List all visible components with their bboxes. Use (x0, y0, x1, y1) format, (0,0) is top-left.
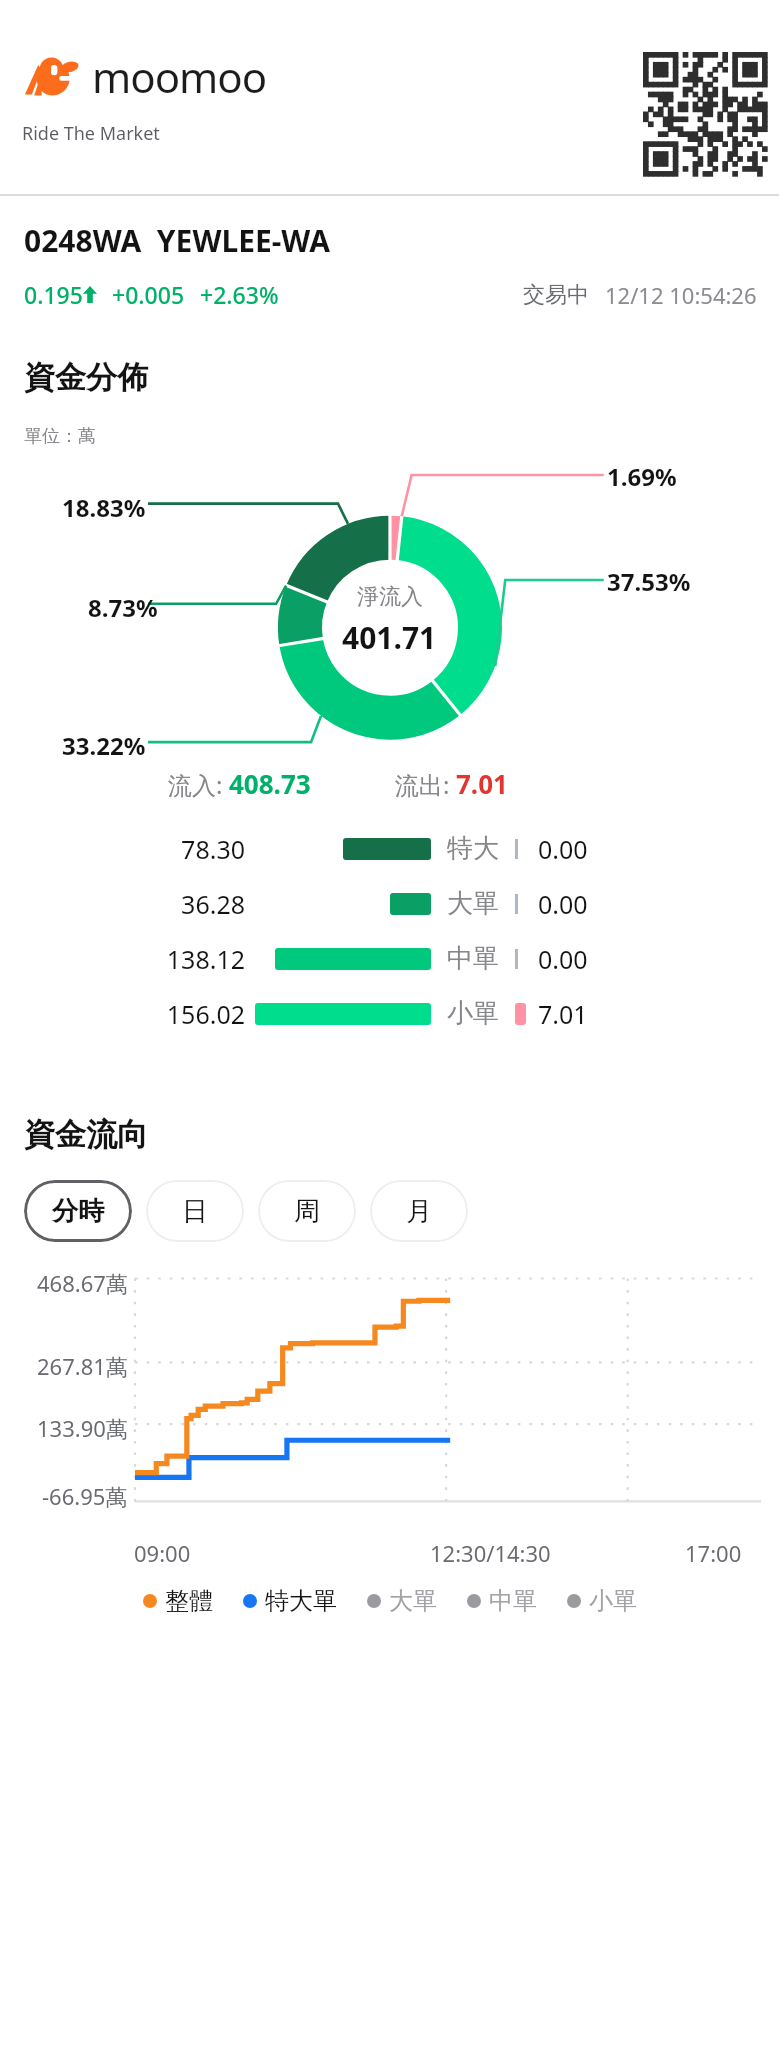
staticText: 淨流入 (357, 583, 423, 611)
button[interactable]: 大單 (367, 1586, 437, 1616)
staticText: 12/12 10:54:26 (605, 280, 757, 310)
staticText: 中單 (447, 942, 499, 975)
staticText: +0.005 (112, 279, 185, 310)
staticText: 流出: (395, 768, 456, 801)
button[interactable]: 特大單 (243, 1586, 337, 1616)
staticText: 大單 (447, 887, 499, 920)
button[interactable]: 分時 (24, 1180, 132, 1242)
staticText: 周 (294, 1195, 320, 1228)
button[interactable]: 中單 (467, 1586, 537, 1616)
staticText: 交易中 (523, 281, 589, 309)
staticText: 分時 (52, 1195, 104, 1228)
staticText: 特大單 (265, 1586, 337, 1616)
staticText: 大單 (389, 1586, 437, 1616)
staticText: 小單 (447, 997, 499, 1030)
staticText: 12:30/14:30 (430, 1538, 551, 1568)
staticText: 中單 (489, 1586, 537, 1616)
button[interactable]: 156.02 (0, 986, 779, 1041)
staticText: 7.01 (538, 997, 588, 1031)
staticText: 8.73% (88, 591, 158, 624)
staticText: 0.00 (538, 887, 588, 921)
staticText: 138.12 (166, 942, 245, 976)
button[interactable]: 小單 (567, 1586, 637, 1616)
staticText: 36.28 (181, 887, 245, 921)
staticText: 0.00 (538, 942, 588, 976)
staticText: 1.69% (607, 460, 677, 493)
staticText: 468.67萬 (37, 1268, 128, 1298)
staticText: 0.00 (538, 832, 588, 866)
staticText: 0248WA YEWLEE-WA (24, 220, 330, 261)
staticText: 特大 (447, 832, 499, 865)
staticText: 單位：萬 (24, 425, 96, 448)
staticText: 資金分佈 (24, 358, 148, 397)
button[interactable]: 周 (258, 1180, 356, 1242)
staticText: 133.90萬 (37, 1413, 128, 1443)
staticText: 401.71 (342, 617, 437, 658)
button[interactable]: 月 (370, 1180, 468, 1242)
staticText: -66.95萬 (42, 1481, 128, 1511)
staticText: 日 (182, 1195, 208, 1228)
staticText: moomoo (92, 48, 267, 105)
staticText: 0.195 (24, 279, 83, 310)
staticText: +2.63% (200, 279, 279, 310)
staticText: 小單 (589, 1586, 637, 1616)
staticText: 156.02 (166, 997, 245, 1031)
button[interactable]: 整體 (143, 1586, 213, 1616)
staticText: 7.01 (456, 766, 508, 801)
staticText: 17:00 (685, 1538, 742, 1568)
button[interactable]: 138.12 (0, 931, 779, 986)
button[interactable]: 日 (146, 1180, 244, 1242)
staticText: 月 (406, 1195, 432, 1228)
staticText: 整體 (165, 1586, 213, 1616)
staticText: 18.83% (62, 491, 146, 524)
other: QR code (643, 52, 767, 176)
staticText: 流入: (168, 768, 229, 801)
staticText: 資金流向 (24, 1115, 148, 1154)
staticText: 78.30 (181, 832, 245, 866)
staticText: Ride The Market (22, 121, 160, 146)
staticText: 37.53% (607, 565, 691, 598)
staticText: 09:00 (134, 1538, 191, 1568)
staticText: 408.73 (229, 766, 311, 801)
staticText: 267.81萬 (37, 1351, 128, 1381)
staticText: 33.22% (62, 729, 146, 762)
button[interactable]: 78.30 (0, 821, 779, 876)
button[interactable]: 36.28 (0, 876, 779, 931)
